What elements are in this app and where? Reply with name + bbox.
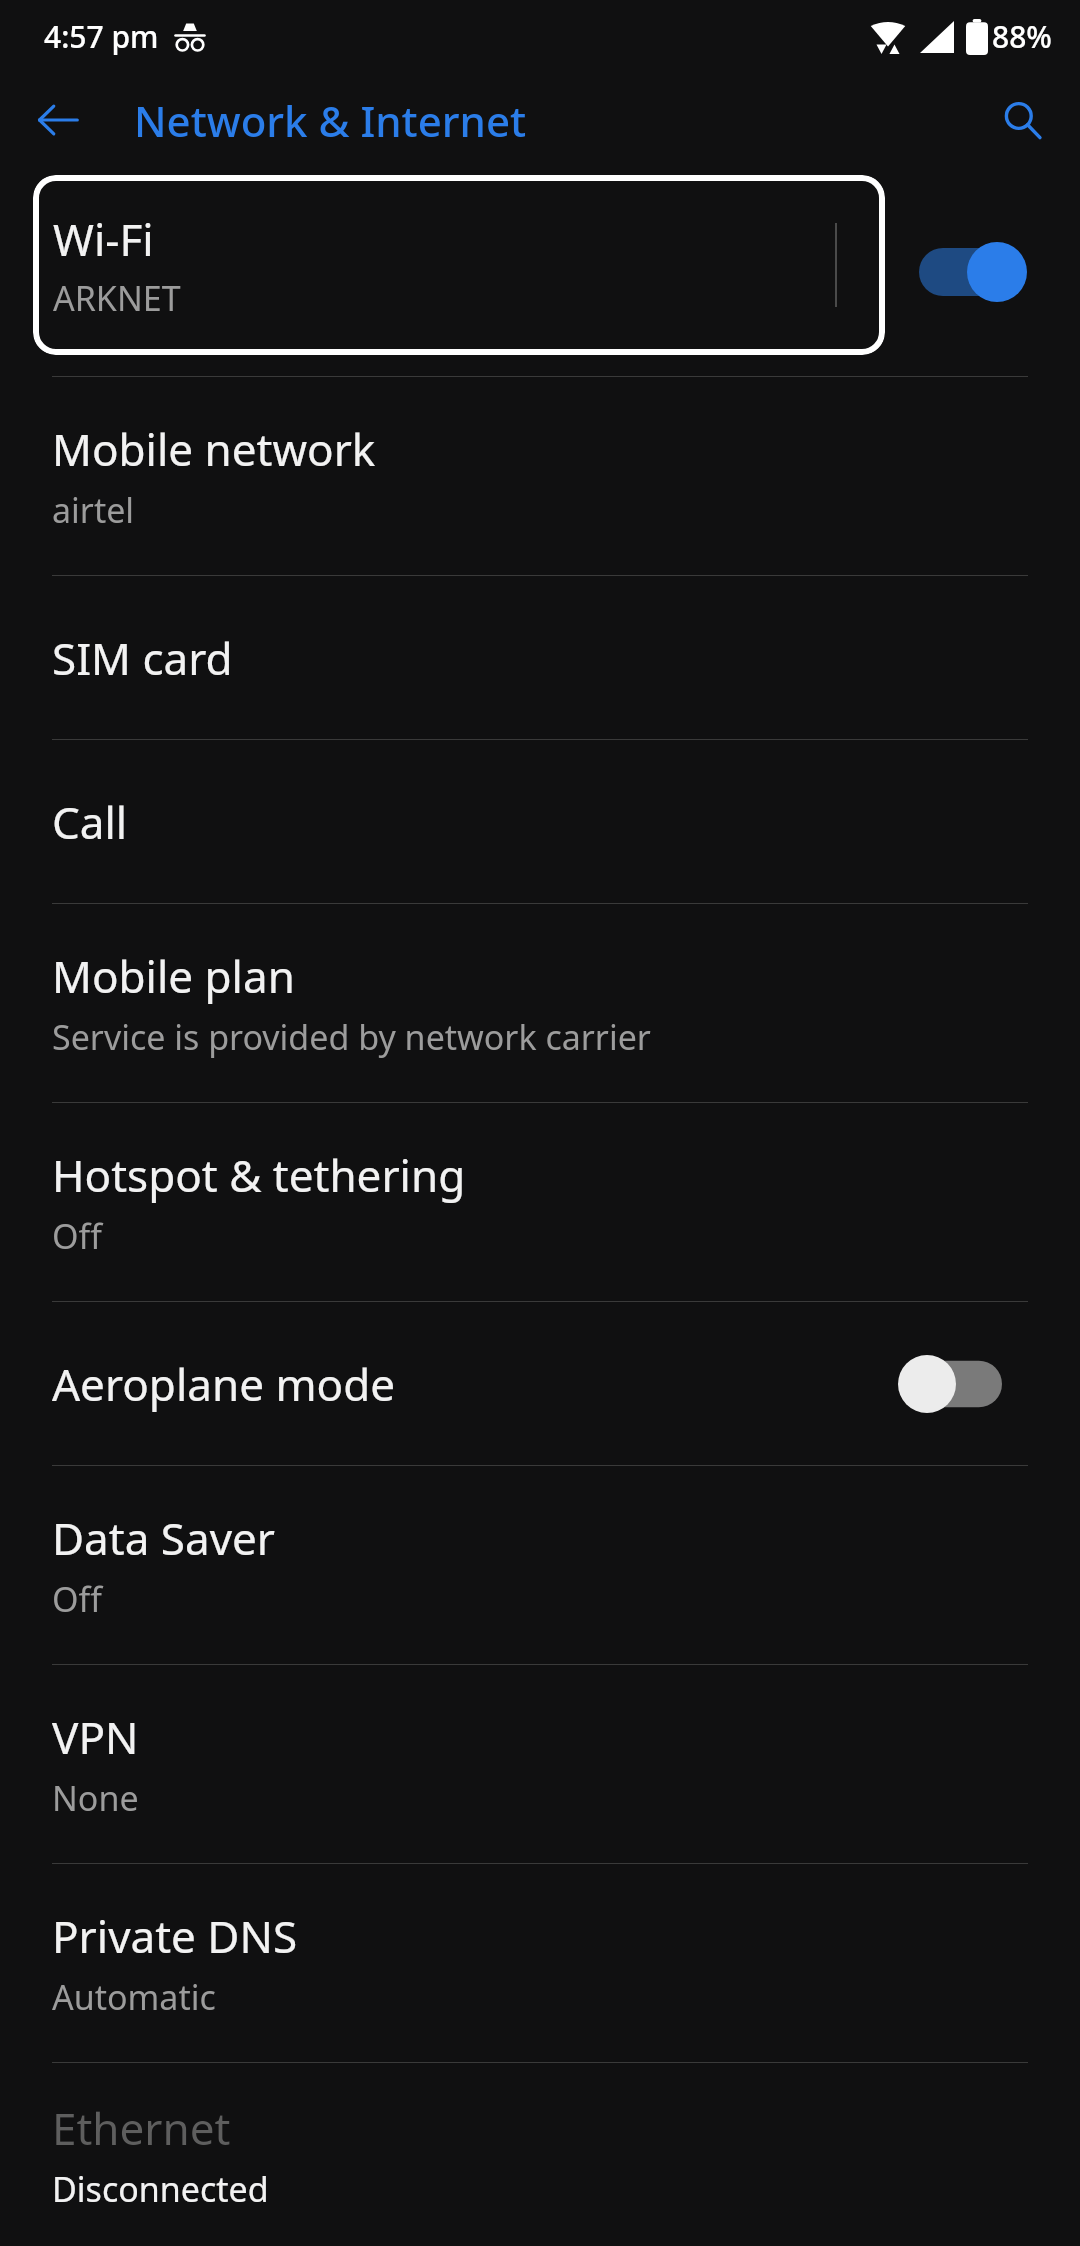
staticText: 88%: [992, 16, 1052, 57]
staticText: ARKNET: [53, 275, 181, 321]
staticText: Data Saver: [52, 1508, 275, 1568]
staticText: Service is provided by network carrier: [52, 1014, 651, 1060]
staticText: Call: [52, 792, 128, 852]
staticText: Automatic: [52, 1974, 216, 2020]
staticText: None: [52, 1775, 139, 1821]
staticText: Off: [52, 1213, 102, 1259]
staticText: Ethernet: [52, 2098, 231, 2158]
button[interactable]: VPN: [0, 1665, 1080, 1863]
button[interactable]: Wi-Fi: [33, 175, 885, 355]
staticText: Wi-Fi: [53, 209, 154, 269]
staticText: Aeroplane mode: [52, 1354, 396, 1414]
button[interactable]: Wi-Fi toggle: [908, 224, 1038, 320]
staticText: Off: [52, 1576, 102, 1622]
staticText: Mobile plan: [52, 946, 295, 1006]
button[interactable]: Call: [0, 740, 1080, 903]
staticText: VPN: [52, 1707, 139, 1767]
staticText: 4:57 pm: [44, 16, 159, 57]
button[interactable]: Mobile network: [0, 377, 1080, 575]
button[interactable]: Ethernet: [0, 2063, 1080, 2246]
staticText: Disconnected: [52, 2166, 269, 2212]
staticText: Mobile network: [52, 419, 376, 479]
button[interactable]: Aeroplane mode: [0, 1302, 1080, 1465]
staticText: Hotspot & tethering: [52, 1145, 466, 1205]
button[interactable]: Back: [22, 84, 94, 156]
button[interactable]: Search: [986, 84, 1058, 156]
button[interactable]: SIM card: [0, 576, 1080, 739]
button[interactable]: Hotspot & tethering: [0, 1103, 1080, 1301]
staticText: SIM card: [52, 628, 233, 688]
staticText: Network & Internet: [134, 92, 527, 149]
button[interactable]: Aeroplane mode toggle: [890, 1336, 1010, 1432]
staticText: Private DNS: [52, 1906, 298, 1966]
staticText: airtel: [52, 487, 135, 533]
button[interactable]: Data Saver: [0, 1466, 1080, 1664]
button[interactable]: Private DNS: [0, 1864, 1080, 2062]
button[interactable]: Mobile plan: [0, 904, 1080, 1102]
